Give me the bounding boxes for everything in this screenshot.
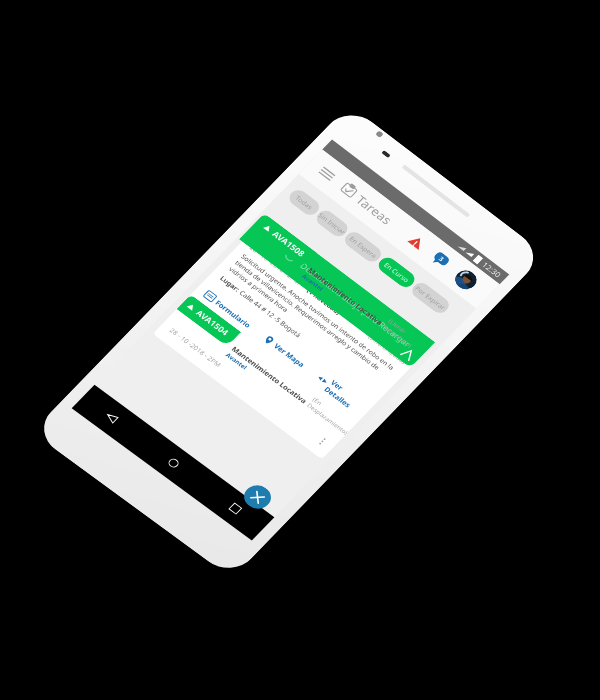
button[interactable]: Profile [318, 102, 352, 136]
staticText: (En Desplazamiento) [291, 436, 370, 464]
staticText: AVA1504 [57, 433, 117, 452]
button[interactable]: Por Expirar [281, 167, 347, 196]
staticText: Mantenimiento Locativa [139, 260, 286, 276]
staticText: Solicitud urgente. Anoche tuvimos un int… [46, 311, 358, 356]
button[interactable]: 28 - 10 -2018 - 2PM [30, 238, 370, 438]
button[interactable]: En Curso [213, 167, 277, 196]
staticText: Avantel [139, 464, 178, 478]
staticText: Formulario [68, 401, 135, 417]
button[interactable]: Formulario [46, 400, 135, 417]
staticText: En Curso [222, 174, 268, 189]
staticText: Calle 44 # 12 -5 Bogotá [85, 363, 204, 378]
button[interactable]: AVA1508 [30, 238, 370, 290]
staticText: 28 - 10 -2018 - 2PM [46, 487, 145, 502]
button[interactable]: AVA1504 [30, 426, 370, 478]
staticText: Avantel [139, 276, 178, 290]
button[interactable]: AVA1504 [30, 426, 370, 520]
staticText: (Llenar Formulario) [291, 248, 370, 276]
staticText: Deslizahacia abajo para Recargar [125, 260, 343, 279]
staticText: Por Expirar [285, 174, 343, 189]
staticText: Mantenimiento Locativa [139, 448, 286, 464]
staticText: (1 novedad) [161, 290, 225, 305]
button[interactable]: Ver Detalles [272, 392, 358, 424]
staticText: (Sincronizada) [285, 290, 358, 305]
staticText: Ver Detalles [293, 392, 358, 424]
